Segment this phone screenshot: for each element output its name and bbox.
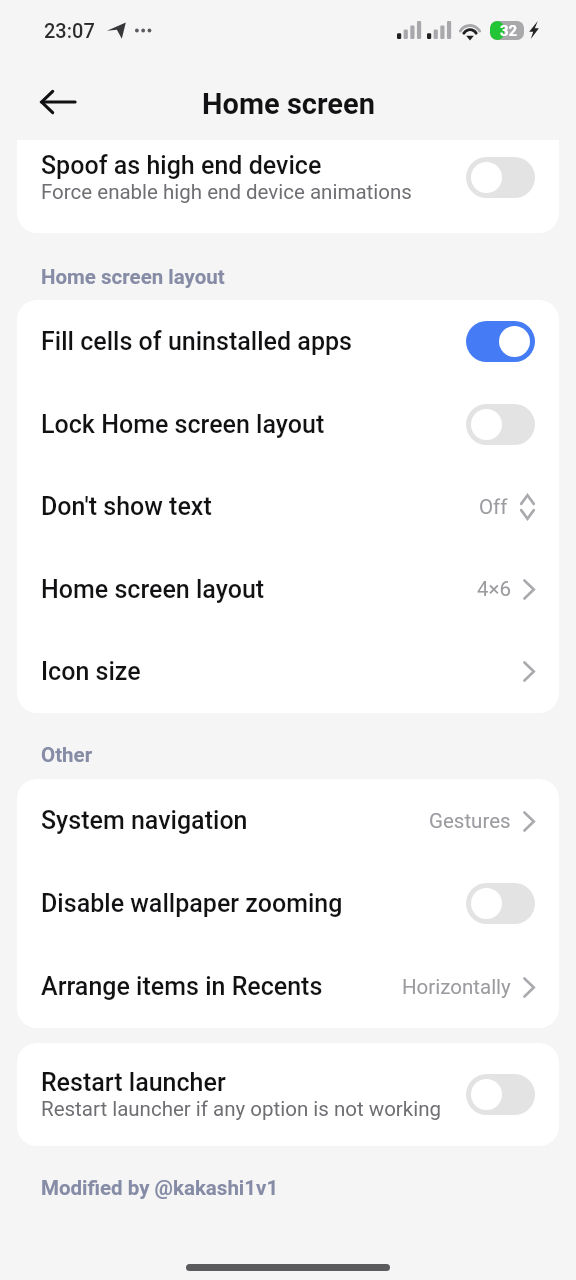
staticText: Arrange items in Recents <box>41 972 323 1001</box>
staticText: Don't show text <box>41 492 212 521</box>
staticText: 4×6 <box>477 577 511 601</box>
staticText: Icon size <box>41 657 141 686</box>
button[interactable]: Disable wallpaper zooming <box>17 862 559 945</box>
staticText: Home screen <box>202 87 375 121</box>
staticText: Restart launcher if any option is not wo… <box>41 1097 442 1121</box>
staticText: Disable wallpaper zooming <box>41 889 343 918</box>
staticText: Home screen layout <box>41 265 225 289</box>
button[interactable]: Don't show text <box>17 465 559 548</box>
button[interactable]: Switch off <box>466 883 535 924</box>
staticText: Spoof as high end device <box>41 151 322 180</box>
button[interactable]: Switch off <box>466 157 535 198</box>
staticText: System navigation <box>41 806 248 835</box>
button[interactable]: Arrange items in Recents <box>17 945 559 1028</box>
staticText: Horizontally <box>402 975 511 999</box>
button[interactable]: Restart launcher <box>17 1043 559 1146</box>
button[interactable]: Fill cells of uninstalled apps <box>17 300 559 383</box>
staticText: 23:07 <box>44 19 95 42</box>
button[interactable]: Switch off <box>466 404 535 445</box>
staticText: 32 <box>500 22 518 40</box>
button[interactable]: Back <box>29 73 87 131</box>
button[interactable]: Switch on <box>466 321 535 362</box>
button[interactable]: Icon size <box>17 630 559 713</box>
staticText: Gestures <box>429 809 511 833</box>
staticText: Lock Home screen layout <box>41 410 325 439</box>
button[interactable]: Home screen layout <box>17 548 559 630</box>
staticText: Restart launcher <box>41 1068 226 1097</box>
button[interactable]: Switch off <box>466 1074 535 1115</box>
staticText: Off <box>479 495 508 519</box>
button[interactable]: System navigation <box>17 779 559 862</box>
button[interactable]: Spoof as high end device <box>17 140 559 224</box>
staticText: Other <box>41 743 93 767</box>
staticText: Fill cells of uninstalled apps <box>41 327 352 356</box>
staticText: Home screen layout <box>41 575 265 604</box>
staticText: Force enable high end device animations <box>41 180 412 204</box>
staticText: Modified by @kakashi1v1 <box>41 1176 279 1200</box>
button[interactable]: Lock Home screen layout <box>17 383 559 465</box>
